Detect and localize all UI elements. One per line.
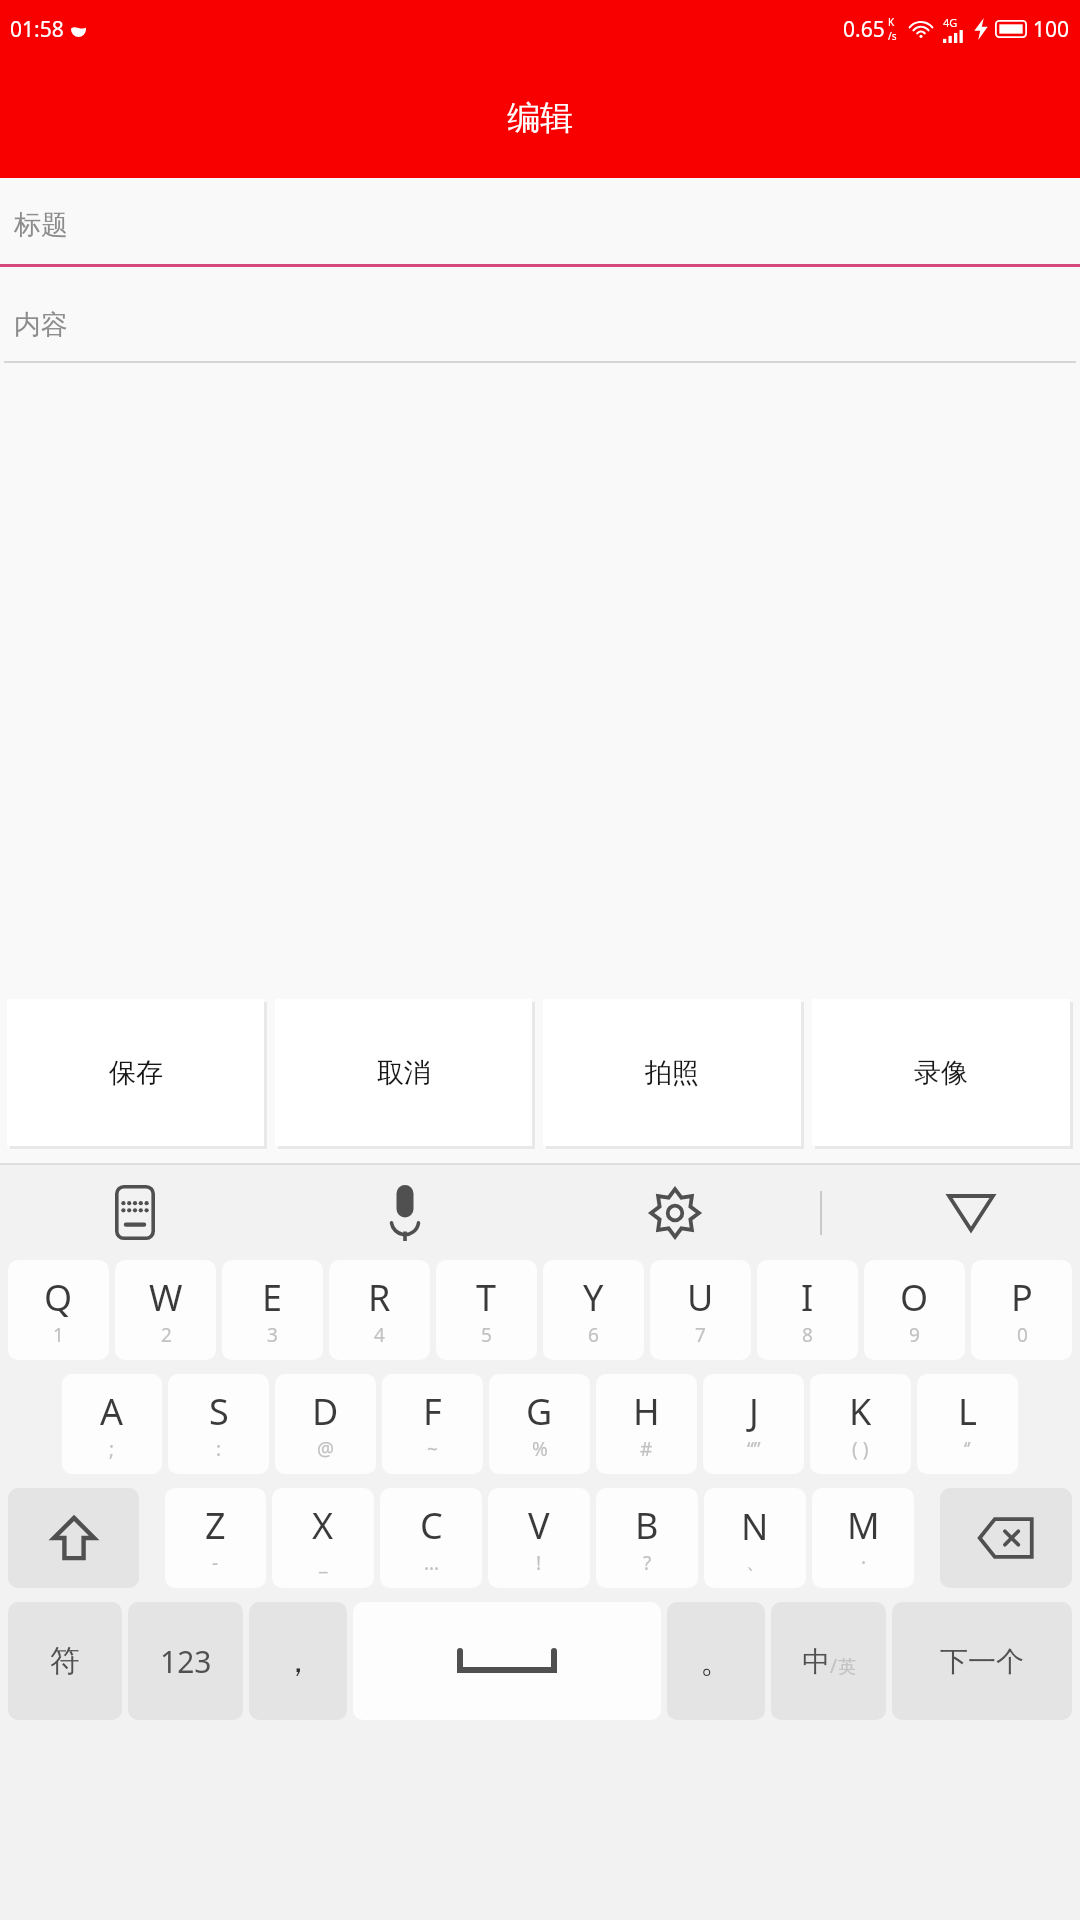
staticText: O [900,1273,929,1322]
button[interactable]: I [757,1260,858,1360]
button[interactable]: 下一个 [892,1602,1072,1720]
staticText: N [741,1502,769,1551]
staticText: 符 [50,1642,80,1680]
staticText: 01:58 [10,15,64,44]
staticText: K [849,1387,872,1436]
staticText: - [212,1550,219,1576]
button[interactable]: L [917,1374,1018,1474]
staticText: 中 [802,1644,830,1679]
staticText: F [423,1387,442,1436]
button[interactable]: U [650,1260,751,1360]
staticText: 下一个 [940,1644,1024,1679]
staticText: 4 [374,1322,385,1348]
button[interactable]: 录像 [812,999,1070,1146]
button[interactable]: 123 [128,1602,243,1720]
button[interactable]: Y [543,1260,644,1360]
staticText: G [526,1387,553,1436]
button[interactable]: M [812,1488,914,1588]
button[interactable]: Keyboard layout [0,1165,270,1260]
staticText: R [368,1273,391,1322]
button[interactable]: Q [8,1260,109,1360]
staticText: 9 [909,1322,920,1348]
staticText: E [262,1273,283,1322]
button[interactable]: 保存 [7,999,264,1146]
staticText: · [861,1550,867,1576]
button[interactable]: Z [165,1488,266,1588]
staticText: 0.65 [843,15,885,44]
staticText: X [312,1501,334,1550]
staticText: ~ [427,1436,438,1462]
staticText: 、 [746,1551,765,1575]
staticText: W [149,1273,183,1322]
button[interactable]: O [864,1260,965,1360]
button[interactable]: Comma [249,1602,347,1720]
staticText: 录像 [914,1056,968,1090]
staticText: 4G [943,15,958,30]
staticText: V [528,1501,550,1550]
button[interactable]: R [329,1260,430,1360]
button[interactable]: Settings [540,1165,810,1260]
button[interactable]: A [62,1374,162,1474]
staticText: 编辑 [507,97,573,139]
staticText: I [801,1273,814,1322]
staticText: /s [888,29,897,43]
staticText: T [476,1273,497,1322]
staticText: _ [319,1550,328,1576]
button[interactable]: H [596,1374,697,1474]
staticText: 。 [700,1641,732,1681]
staticText: # [640,1436,653,1462]
staticText: M [847,1501,880,1550]
staticText: 标题 [14,208,68,242]
staticText: 3 [267,1322,278,1348]
button[interactable]: 中 [771,1602,886,1720]
staticText: 123 [160,1641,212,1682]
button[interactable]: D [275,1374,376,1474]
button[interactable]: C [380,1488,482,1588]
button[interactable]: T [436,1260,537,1360]
staticText: % [532,1436,548,1462]
button[interactable]: 符 [8,1602,122,1720]
button[interactable]: E [222,1260,323,1360]
button[interactable]: 内容 [0,289,1080,361]
staticText: 取消 [377,1056,431,1090]
button[interactable]: V [488,1488,590,1588]
button[interactable]: B [596,1488,698,1588]
staticText: 保存 [109,1056,163,1090]
staticText: ‘’ [964,1436,971,1462]
staticText: U [687,1273,714,1322]
staticText: 7 [695,1322,706,1348]
button[interactable]: X [272,1488,374,1588]
staticText: ; [109,1436,115,1462]
staticText: / [830,1653,838,1679]
staticText: D [312,1387,339,1436]
button[interactable]: Backspace [940,1488,1072,1588]
button[interactable]: Hide keyboard [939,1181,1003,1245]
button[interactable]: 取消 [275,999,532,1146]
staticText: 1 [53,1322,64,1348]
button[interactable]: G [489,1374,590,1474]
button[interactable]: Space [353,1602,661,1720]
button[interactable]: Period [667,1602,765,1720]
button[interactable]: Voice input [270,1165,540,1260]
staticText: 英 [838,1656,856,1679]
button[interactable]: P [971,1260,1072,1360]
staticText: 2 [161,1322,172,1348]
button[interactable]: W [115,1260,216,1360]
staticText: Z [205,1501,226,1550]
staticText: @ [317,1436,335,1462]
staticText: A [100,1387,124,1436]
button[interactable]: J [703,1374,804,1474]
button[interactable]: S [168,1374,269,1474]
button[interactable]: 标题 [0,186,1080,264]
button[interactable]: Shift [8,1488,139,1588]
button[interactable]: 拍照 [543,999,801,1146]
button[interactable]: N [704,1488,806,1588]
staticText: P [1011,1273,1033,1322]
staticText: 8 [802,1322,813,1348]
staticText: L [958,1387,977,1436]
staticText: Y [583,1273,604,1322]
button[interactable]: K [810,1374,911,1474]
button[interactable]: F [382,1374,483,1474]
staticText: K [888,15,895,29]
staticText: “” [747,1436,761,1462]
